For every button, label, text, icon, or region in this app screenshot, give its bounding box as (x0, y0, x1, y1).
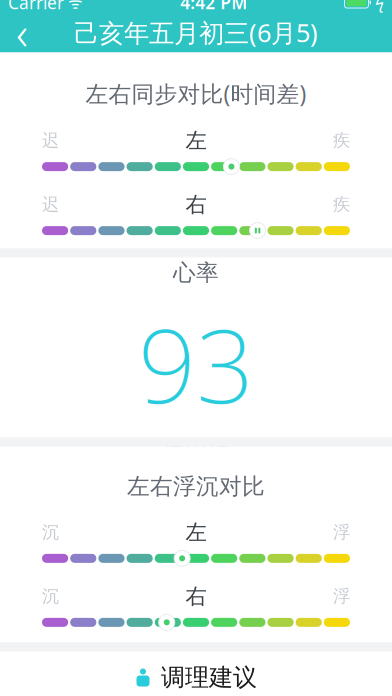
staticText: Carrier (8, 0, 64, 14)
staticText: 左 (185, 519, 206, 545)
staticText: 左右同步对比(时间差) (85, 78, 306, 109)
staticText: 迟 (42, 130, 59, 151)
staticText: 沉 (42, 522, 59, 543)
button[interactable]: Back (0, 12, 44, 52)
staticText: ‹ (16, 2, 28, 63)
staticText: 迟 (42, 194, 59, 215)
staticText: 次/分钟 (164, 437, 228, 462)
staticText: 右 (185, 191, 206, 218)
staticText: 93 (138, 297, 254, 431)
button[interactable]: 调理建议 (0, 651, 392, 696)
staticText: 浮 (333, 586, 350, 607)
staticText: 心率 (173, 259, 219, 287)
staticText: 沉 (42, 586, 59, 607)
staticText: ᯤ (64, 0, 83, 13)
staticText: 右 (185, 583, 206, 609)
staticText: ϟ (371, 0, 384, 13)
staticText: 疾 (333, 130, 350, 151)
staticText: 左 (185, 127, 206, 154)
staticText: 左右浮沉对比 (127, 472, 265, 500)
staticText: 调理建议 (161, 663, 257, 692)
staticText: 己亥年五月初三(6月5) (74, 16, 318, 49)
staticText: 疾 (333, 194, 350, 215)
staticText: 4:42 PM (180, 0, 247, 14)
staticText: 浮 (333, 522, 350, 543)
